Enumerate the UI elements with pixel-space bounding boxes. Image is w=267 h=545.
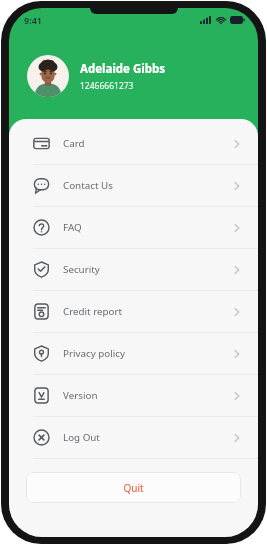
button[interactable]: Security — [9, 249, 258, 290]
other: Open Security — [234, 265, 240, 275]
staticText: Security — [63, 263, 100, 276]
other: Open Log Out — [234, 433, 240, 443]
button[interactable]: Card — [9, 123, 258, 164]
staticText: Adelaide Gibbs — [80, 61, 166, 77]
button[interactable]: Version — [9, 375, 258, 416]
staticText: Quit — [123, 481, 144, 495]
staticText: 12466661273 — [80, 80, 134, 92]
other: Open Version — [234, 391, 240, 401]
other: Open Contact Us — [234, 181, 240, 191]
other: Open FAQ — [234, 223, 240, 233]
other: Open Credit report — [234, 307, 240, 317]
button[interactable]: Contact Us — [9, 165, 258, 206]
other: Open Privacy policy — [234, 349, 240, 359]
staticText: Card — [63, 137, 85, 150]
staticText: Credit report — [63, 305, 123, 318]
staticText: Log Out — [63, 431, 100, 444]
staticText: 9:41 — [24, 14, 42, 26]
button[interactable]: Credit report — [9, 291, 258, 332]
button[interactable]: Quit — [26, 472, 241, 503]
other: Open Card — [234, 139, 240, 149]
button[interactable]: FAQ — [9, 207, 258, 248]
staticText: FAQ — [63, 221, 82, 234]
staticText: Contact Us — [63, 179, 113, 192]
staticText: Version — [63, 389, 98, 402]
staticText: Privacy policy — [63, 347, 125, 360]
button[interactable]: Log Out — [9, 417, 258, 458]
button[interactable]: Privacy policy — [9, 333, 258, 374]
